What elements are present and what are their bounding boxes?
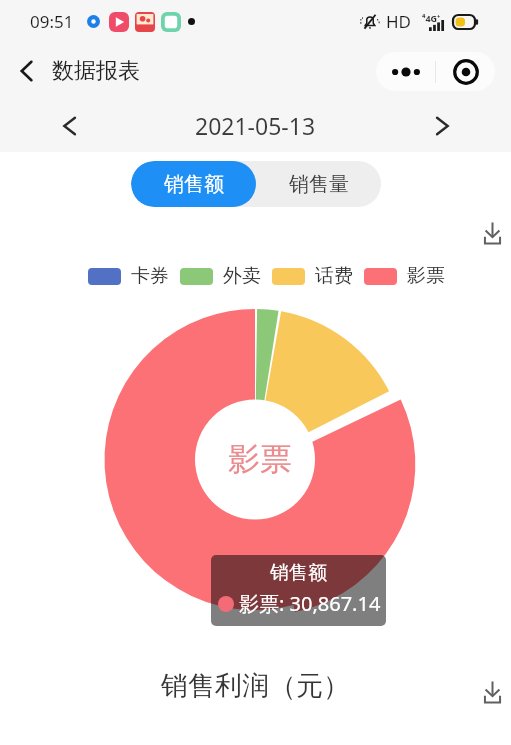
button[interactable]: 销售额 <box>131 161 256 207</box>
button[interactable]: Back <box>11 55 43 87</box>
staticText: ⁴4G⁺ <box>422 12 441 24</box>
staticText: 影票 <box>407 264 445 288</box>
staticText: 销售量 <box>289 172 349 197</box>
staticText: 外卖 <box>223 264 261 288</box>
staticText: HD <box>386 10 412 33</box>
staticText: 销售额 <box>164 172 224 197</box>
staticText: 销售利润（元） <box>161 669 350 703</box>
staticText: 话费 <box>315 264 353 288</box>
button[interactable]: Previous day <box>53 110 85 142</box>
staticText: 影票 <box>228 439 292 479</box>
button[interactable]: 销售量 <box>256 161 381 207</box>
button[interactable]: Download profit chart <box>477 677 507 707</box>
button[interactable]: Download sales chart <box>477 218 507 248</box>
button[interactable]: More <box>376 52 435 91</box>
button[interactable]: Next day <box>426 110 458 142</box>
staticText: 销售额 <box>211 561 386 585</box>
button[interactable]: Close <box>436 52 495 91</box>
staticText: 09:51 <box>30 10 74 33</box>
staticText: 卡券 <box>131 264 169 288</box>
staticText: 影票: 30,867.14 <box>239 590 381 617</box>
staticText: 2021-05-13 <box>195 110 316 141</box>
staticText: 数据报表 <box>52 57 140 85</box>
